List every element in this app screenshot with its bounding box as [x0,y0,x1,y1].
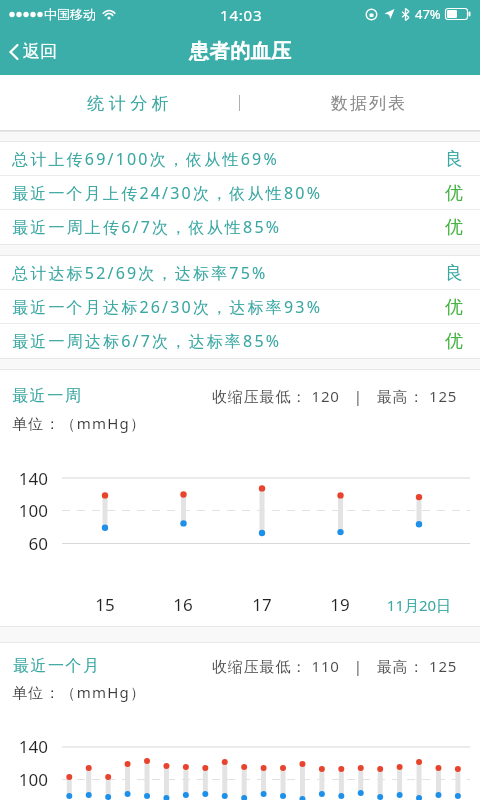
staticText: 收缩压最低： 120 | 最高： 125 [212,386,458,406]
staticText: 16 [153,593,213,616]
staticText: 最近一周达标6/7次，达标率85% [12,330,282,352]
staticText: 最近一个月达标26/30次，达标率93% [12,296,323,318]
staticText: 140 [0,467,48,490]
staticText: 140 [0,735,48,758]
staticText: 总计上传69/100次，依从性69% [12,148,279,170]
staticText: 统计分析 [85,93,171,114]
button[interactable]: 统计分析 [0,75,239,131]
button[interactable]: 最近一个月达标26/30次，达标率93% [0,290,480,324]
staticText: 数据列表 [330,93,406,114]
button[interactable]: 最近一周上传6/7次，依从性85% [0,210,480,244]
staticText: 返回 [23,41,57,62]
button[interactable]: 总计达标52/69次，达标率75% [0,256,480,290]
staticText: 优 [445,182,463,205]
staticText: 优 [445,296,463,319]
button[interactable]: 返回 [8,41,57,62]
staticText: 最近一个月上传24/30次，依从性80% [12,182,323,204]
staticText: 单位：（mmHg） [12,682,147,702]
staticText: 总计达标52/69次，达标率75% [12,262,268,284]
staticText: 15 [75,593,135,616]
staticText: 最近一周上传6/7次，依从性85% [12,216,282,238]
staticText: 单位：（mmHg） [12,413,147,433]
staticText: 最近一周 [12,386,83,406]
button[interactable]: 最近一个月上传24/30次，依从性80% [0,176,480,210]
staticText: 11月20日 [384,595,454,615]
staticText: 收缩压最低： 110 | 最高： 125 [212,656,458,676]
staticText: 良 [445,148,463,171]
button[interactable]: 数据列表 [240,75,480,131]
staticText: 患者的血压 [189,39,292,64]
staticText: 良 [445,262,463,285]
button[interactable]: 总计上传69/100次，依从性69% [0,142,480,176]
staticText: 47% [415,5,441,23]
staticText: 19 [310,593,370,616]
staticText: 100 [0,768,48,791]
staticText: 优 [445,330,463,353]
staticText: 100 [0,499,48,522]
staticText: 优 [445,216,463,239]
staticText: 最近一个月 [12,656,100,676]
button[interactable]: 最近一周达标6/7次，达标率85% [0,324,480,358]
staticText: 中国移动 [44,6,96,22]
staticText: 60 [0,532,48,555]
staticText: 17 [232,593,292,616]
staticText: 14:03 [220,5,263,25]
